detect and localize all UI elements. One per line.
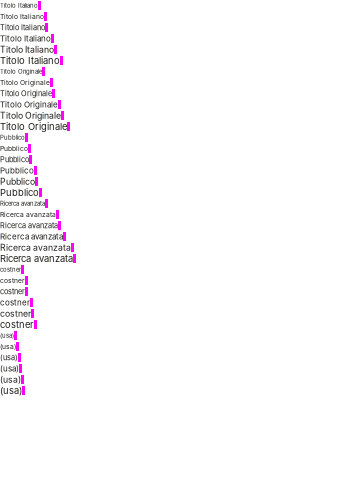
staticText: costner (0, 308, 31, 319)
staticText: (usa) (0, 353, 18, 362)
staticText: Titolo Italiano (0, 55, 60, 66)
staticText: Pubblico (0, 176, 35, 187)
staticText: Ricerca avanzata (0, 242, 71, 253)
staticText: Pubblico (0, 144, 28, 153)
staticText: (usa) (0, 374, 21, 385)
staticText: Ricerca avanzata (0, 253, 73, 264)
staticText: Ricerca avanzata (0, 221, 58, 230)
staticText: (usa) (0, 364, 19, 373)
staticText: Pubblico (0, 166, 34, 175)
staticText: Pubblico (0, 187, 39, 198)
staticText: Ricerca avanzata (0, 210, 56, 219)
staticText: Ricerca avanzata (0, 200, 45, 207)
staticText: costner (0, 319, 34, 330)
staticText: Pubblico (0, 134, 25, 141)
staticText: Titolo Italiano (0, 2, 38, 9)
staticText: costner (0, 298, 30, 307)
staticText: costner (0, 266, 21, 273)
staticText: Ricerca avanzata (0, 232, 63, 241)
staticText: costner (0, 287, 25, 296)
staticText: (usa) (0, 385, 22, 396)
staticText: Titolo Italiano (0, 12, 44, 21)
staticText: Titolo Italiano (0, 44, 54, 55)
staticText: costner (0, 276, 25, 285)
staticText: Titolo Originale (0, 68, 42, 75)
staticText: Pubblico (0, 155, 29, 164)
staticText: Titolo Originale (0, 100, 58, 109)
staticText: Titolo Originale (0, 89, 52, 98)
staticText: Titolo Italiano (0, 34, 51, 43)
staticText: (usa) (0, 332, 14, 339)
staticText: (usa) (0, 342, 16, 351)
staticText: Titolo Italiano (0, 23, 45, 32)
staticText: Titolo Originale (0, 78, 50, 87)
staticText: Titolo Originale (0, 110, 61, 121)
staticText: Titolo Originale (0, 121, 67, 132)
